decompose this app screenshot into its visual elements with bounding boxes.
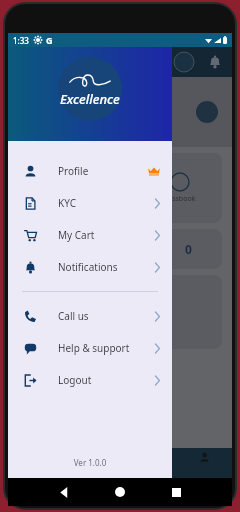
staticText: Passbook [164,194,196,204]
staticText: REFREND EARN [22,355,68,380]
staticText: Help & support [58,341,130,355]
staticText: Ver 1.0.0 [8,457,172,468]
staticText: Logout [58,373,92,387]
staticText: 0 [185,241,192,257]
staticText: Profile [58,164,89,178]
staticText: My Cart [58,228,95,242]
button[interactable]: Logout [8,364,172,396]
staticText: Excellence [60,90,120,108]
staticText: 1:33 [13,35,29,46]
staticText: KYC [58,196,76,210]
button[interactable]: Profile [8,155,172,187]
staticText: Notifications [58,260,118,274]
button[interactable]: Notifications [8,251,172,283]
staticText: Call us [58,309,89,323]
button[interactable]: KYC [8,187,172,219]
button[interactable]: My Cart [8,219,172,251]
button[interactable]: Call us [8,300,172,332]
staticText: G [46,34,53,46]
button[interactable]: Help & support [8,332,172,364]
